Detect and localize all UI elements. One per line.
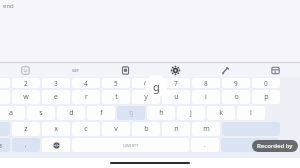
button[interactable]: g — [117, 106, 145, 120]
staticText: 6 — [144, 79, 148, 88]
staticText: 0 — [264, 79, 268, 88]
button[interactable]: o — [222, 90, 250, 104]
staticText: z — [24, 124, 28, 134]
button[interactable]: p — [252, 90, 280, 104]
button[interactable]: , — [12, 138, 40, 152]
staticText: 9 — [234, 79, 238, 88]
staticText: ?123 — [0, 142, 2, 149]
staticText: d — [69, 108, 74, 118]
button[interactable]: d — [57, 106, 85, 120]
button[interactable]: 8 — [192, 78, 220, 88]
staticText: s — [39, 108, 43, 118]
button[interactable]: ?123 — [0, 138, 10, 152]
staticText: r — [85, 92, 88, 102]
button[interactable]: j — [177, 106, 205, 120]
staticText: g — [129, 108, 134, 118]
button[interactable]: 2 — [12, 78, 40, 88]
staticText: end — [3, 2, 14, 10]
staticText: . — [204, 141, 206, 149]
button[interactable]: f — [87, 106, 115, 120]
staticText: j — [190, 108, 192, 118]
staticText: , — [25, 141, 27, 149]
button[interactable]: n — [162, 122, 190, 136]
staticText: l — [250, 108, 252, 118]
button[interactable]: a — [0, 106, 25, 120]
staticText: i — [205, 92, 207, 102]
staticText: o — [234, 92, 239, 102]
button[interactable]: w — [12, 90, 40, 104]
button[interactable]: Stickers — [0, 63, 50, 77]
button[interactable]: b — [132, 122, 160, 136]
staticText: v — [114, 124, 118, 134]
button[interactable]: GIF — [50, 63, 100, 77]
staticText: m — [203, 124, 210, 134]
staticText: GIF — [72, 68, 79, 73]
staticText: p — [264, 92, 269, 102]
staticText: 3 — [54, 79, 58, 88]
button[interactable]: x — [42, 122, 70, 136]
button[interactable]: i — [192, 90, 220, 104]
button[interactable]: Enter — [221, 138, 279, 152]
staticText: 5 — [114, 79, 118, 88]
button[interactable]: s — [27, 106, 55, 120]
button[interactable]: u — [162, 90, 190, 104]
button[interactable]: 6 — [132, 78, 160, 88]
button[interactable]: h — [147, 106, 175, 120]
staticText: y — [144, 92, 148, 102]
button[interactable]: r — [72, 90, 100, 104]
staticText: k — [219, 108, 223, 118]
staticText: 2 — [24, 79, 28, 88]
staticText: b — [144, 124, 149, 134]
button[interactable]: l — [237, 106, 265, 120]
button[interactable]: z — [12, 122, 40, 136]
staticText: c — [84, 124, 88, 134]
button[interactable]: 9 — [222, 78, 250, 88]
button[interactable]: 0 — [252, 78, 280, 88]
staticText: 7 — [174, 79, 178, 88]
staticText: 8 — [204, 79, 208, 88]
staticText: a — [9, 108, 13, 118]
staticText: u — [174, 92, 179, 102]
button[interactable]: Clipboard — [100, 63, 150, 77]
staticText: t — [115, 92, 118, 102]
button[interactable]: t — [102, 90, 130, 104]
button[interactable]: 4 — [72, 78, 100, 88]
button[interactable]: Change language — [42, 138, 70, 152]
button[interactable]: k — [207, 106, 235, 120]
button[interactable]: 7 — [162, 78, 190, 88]
button[interactable]: 3 — [42, 78, 70, 88]
staticText: h — [159, 108, 164, 118]
staticText: Recorded by — [257, 142, 293, 150]
button[interactable]: Handwriting — [200, 63, 250, 77]
staticText: x — [54, 124, 58, 134]
button[interactable]: QWERTY — [72, 138, 189, 152]
button[interactable]: 5 — [102, 78, 130, 88]
button[interactable]: y — [132, 90, 160, 104]
button[interactable]: Settings — [150, 63, 200, 77]
button[interactable]: e — [42, 90, 70, 104]
staticText: e — [54, 92, 58, 102]
button[interactable]: c — [72, 122, 100, 136]
button[interactable]: Translate — [250, 63, 300, 77]
staticText: g — [153, 79, 160, 94]
button[interactable]: m — [192, 122, 220, 136]
staticText: n — [174, 124, 179, 134]
staticText: f — [100, 108, 103, 118]
staticText: QWERTY — [123, 143, 139, 148]
button[interactable]: v — [102, 122, 130, 136]
staticText: w — [23, 92, 29, 102]
staticText: 4 — [84, 79, 88, 88]
